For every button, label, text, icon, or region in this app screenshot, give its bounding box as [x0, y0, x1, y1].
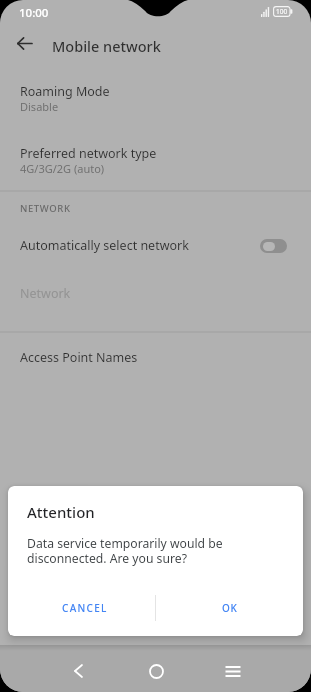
staticText: Automatically select network — [20, 237, 189, 254]
staticText: Access Point Names — [20, 349, 138, 366]
staticText: 4G/3G/2G (auto) — [20, 161, 105, 176]
staticText: Preferred network type — [20, 145, 157, 162]
staticText: 100 — [276, 7, 288, 16]
staticText: CANCEL — [62, 601, 108, 615]
button[interactable]: Recent apps — [211, 649, 255, 692]
staticText: NETWORK — [20, 202, 71, 215]
staticText: Data service temporarily would be discon… — [27, 535, 223, 566]
button[interactable]: Access Point Names — [0, 332, 311, 378]
button[interactable]: OK — [156, 593, 303, 623]
staticText: OK — [222, 601, 238, 615]
button[interactable]: Back — [7, 26, 41, 60]
button[interactable]: CANCEL — [8, 593, 155, 623]
staticText: Roaming Mode — [20, 83, 110, 100]
staticText: 10:00 — [19, 5, 49, 21]
staticText: Disable — [20, 99, 59, 114]
staticText: Mobile network — [52, 36, 161, 56]
staticText: Attention — [27, 502, 95, 522]
button[interactable]: Automatically select network — [0, 222, 311, 266]
button[interactable]: Home — [134, 649, 178, 692]
button[interactable]: Preferred network type — [0, 135, 311, 187]
button[interactable]: Back — [56, 649, 100, 692]
staticText: Network — [20, 285, 71, 302]
button[interactable]: Roaming Mode — [0, 73, 311, 125]
